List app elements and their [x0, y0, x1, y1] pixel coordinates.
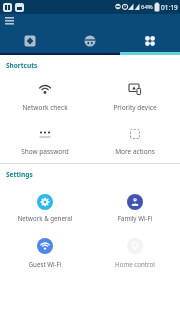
staticText: Network check — [0, 103, 90, 112]
staticText: Home control — [90, 260, 180, 268]
button[interactable] — [90, 186, 180, 230]
staticText: Settings — [6, 170, 66, 179]
staticText: Family Wi-Fi — [90, 214, 180, 222]
button[interactable] — [0, 230, 90, 274]
staticText: 01:19 — [161, 3, 180, 12]
staticText: Show password — [0, 147, 90, 156]
button[interactable] — [0, 186, 90, 230]
button[interactable] — [90, 230, 180, 274]
button[interactable] — [0, 75, 90, 117]
staticText: More actions — [90, 147, 180, 156]
button[interactable] — [90, 120, 180, 162]
button[interactable] — [60, 28, 120, 53]
staticText: Shortcuts — [6, 61, 66, 70]
staticText: 64% — [141, 3, 159, 11]
staticText: Network & general — [0, 214, 90, 222]
staticText: Priority device — [90, 103, 180, 112]
button[interactable] — [0, 28, 60, 53]
button[interactable] — [120, 28, 180, 53]
staticText: Guest Wi-Fi — [0, 260, 90, 268]
button[interactable] — [0, 14, 20, 30]
button[interactable] — [90, 75, 180, 117]
button[interactable] — [0, 120, 90, 162]
